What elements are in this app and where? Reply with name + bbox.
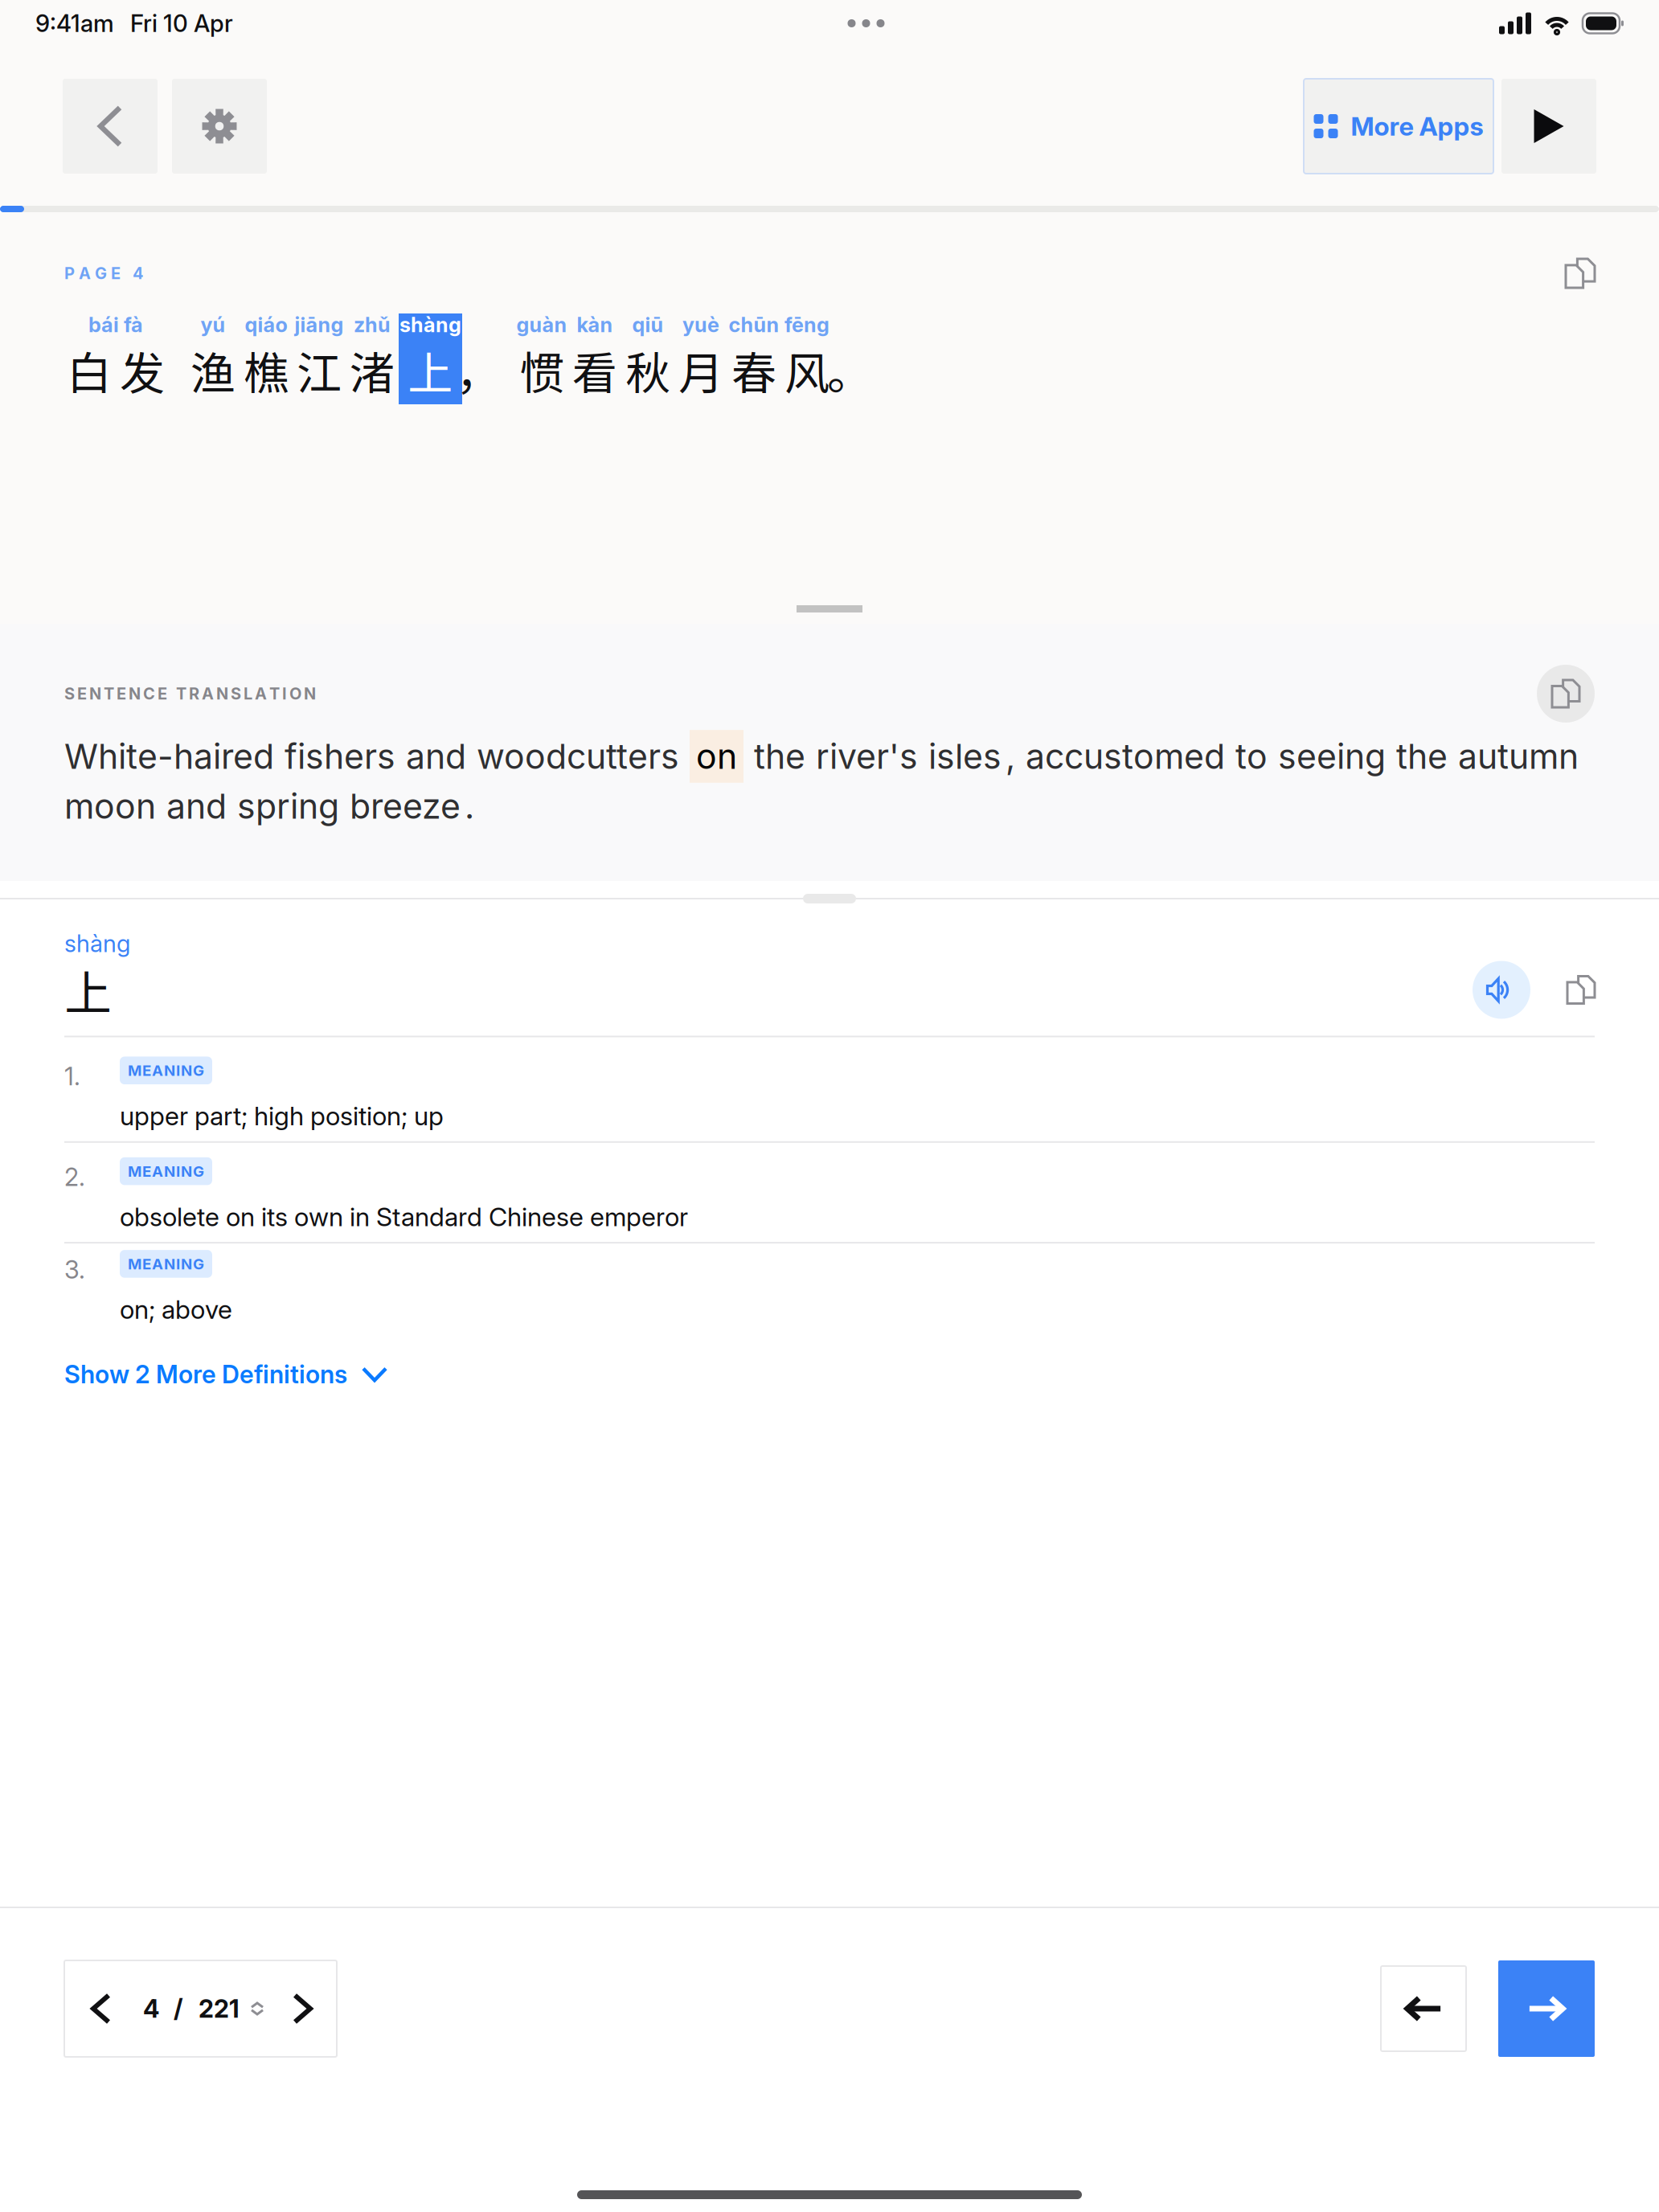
staticText: seeing — [1278, 736, 1386, 777]
staticText: autumn — [1458, 736, 1579, 777]
staticText: breeze — [350, 785, 461, 827]
staticText: 上 — [408, 338, 453, 403]
button[interactable]: Copy translation — [1537, 665, 1595, 723]
staticText: ， — [456, 338, 501, 403]
staticText: upper part; high position; up — [120, 1100, 444, 1132]
staticText: bái fà — [88, 312, 143, 337]
staticText: zhǔ — [354, 312, 391, 337]
staticText: Fri 10 Apr — [130, 9, 233, 38]
staticText: 发 — [120, 338, 165, 403]
button[interactable]: Show 2 More Definitions — [64, 1360, 386, 1389]
staticText: 渔 — [190, 338, 236, 403]
staticText: 秋 — [625, 338, 670, 403]
button[interactable]: Play — [1501, 79, 1596, 174]
staticText: fēng — [784, 312, 829, 337]
staticText: P A G E 4 — [64, 264, 144, 283]
staticText: 9:41am — [35, 9, 114, 38]
staticText: Show 2 More Definitions — [64, 1360, 347, 1389]
staticText: shàng — [64, 929, 130, 958]
staticText: isles — [928, 736, 1002, 777]
staticText: 江 — [297, 338, 342, 403]
staticText: shàng — [399, 312, 461, 337]
staticText: M E A N I N G — [128, 1162, 204, 1180]
staticText: jiāng — [295, 312, 344, 337]
staticText: on; above — [120, 1294, 232, 1325]
button[interactable]: Back — [63, 79, 158, 174]
staticText: / — [174, 1994, 183, 2024]
staticText: S E N T E N C E T R A N S L A T I O N — [64, 684, 316, 703]
button[interactable]: Next — [1498, 1960, 1595, 2057]
staticText: yuè — [682, 312, 719, 337]
button[interactable]: Copy word — [1567, 976, 1595, 1004]
staticText: 樵 — [244, 338, 289, 403]
button[interactable]: More Apps — [1304, 79, 1493, 174]
button[interactable]: Copy sentence — [1566, 259, 1595, 288]
staticText: 白 — [67, 338, 112, 403]
staticText: 1. — [64, 1061, 80, 1091]
staticText: 风 — [784, 338, 829, 403]
staticText: the — [754, 736, 805, 777]
staticText: fishers — [285, 736, 395, 777]
staticText: 3. — [64, 1255, 85, 1285]
staticText: 221 — [199, 1994, 240, 2024]
staticText: on — [696, 736, 737, 777]
staticText: guàn — [516, 312, 567, 337]
staticText: the — [1396, 736, 1448, 777]
staticText: yú — [201, 312, 225, 337]
staticText: to — [1235, 736, 1268, 777]
staticText: 上 — [64, 956, 112, 1024]
staticText: 月 — [678, 338, 723, 403]
staticText: moon — [64, 785, 156, 827]
staticText: and — [406, 736, 466, 777]
staticText: M E A N I N G — [128, 1255, 204, 1273]
staticText: accustomed — [1026, 736, 1225, 777]
staticText: 看 — [572, 338, 617, 403]
staticText: 渚 — [350, 338, 395, 403]
button[interactable]: Settings — [172, 79, 267, 174]
staticText: , — [1006, 736, 1015, 777]
staticText: chūn — [729, 312, 779, 337]
staticText: 4 — [143, 1994, 159, 2024]
staticText: M E A N I N G — [128, 1061, 204, 1080]
staticText: 春 — [731, 338, 776, 403]
button[interactable]: Next page — [295, 1995, 310, 2022]
staticText: 惯 — [519, 338, 564, 403]
staticText: river's — [816, 736, 918, 777]
staticText: qiáo — [245, 312, 287, 337]
staticText: 2. — [64, 1162, 85, 1192]
staticText: White-haired — [64, 736, 274, 777]
staticText: kàn — [577, 312, 613, 337]
staticText: obsolete on its own in Standard Chinese … — [120, 1201, 688, 1232]
staticText: and — [166, 785, 227, 827]
staticText: qiū — [632, 312, 664, 337]
staticText: More Apps — [1351, 111, 1483, 142]
staticText: . — [465, 785, 474, 827]
button[interactable]: Pronounce — [1473, 961, 1530, 1019]
staticText: spring — [237, 785, 339, 827]
staticText: 。 — [827, 338, 872, 403]
button[interactable]: Previous — [1381, 1966, 1466, 2051]
button[interactable]: Previous page — [93, 1995, 109, 2022]
staticText: woodcutters — [477, 736, 679, 777]
